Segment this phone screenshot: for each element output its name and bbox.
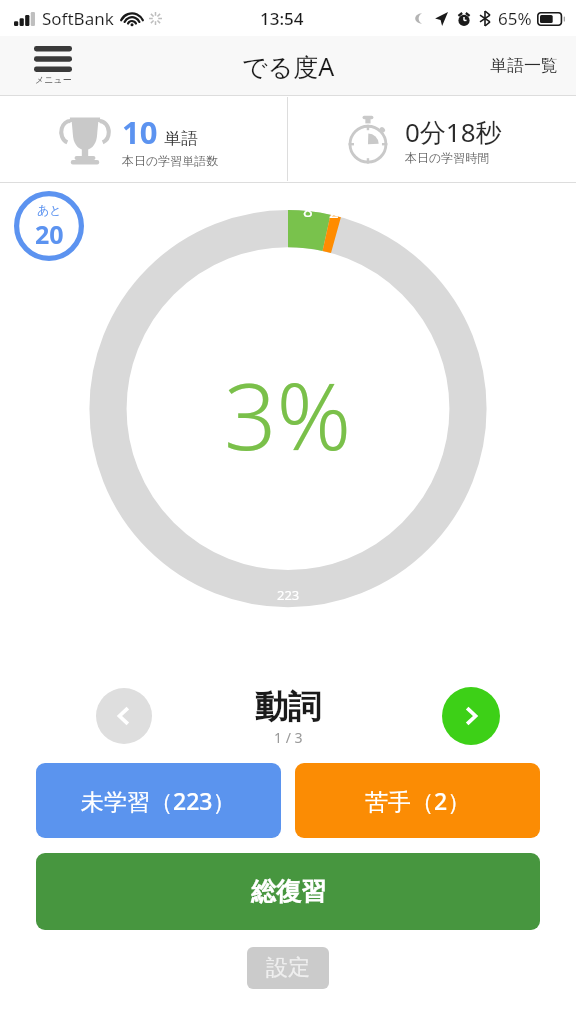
staticText: 本日の学習時間 (405, 150, 490, 165)
button[interactable]: あと (14, 191, 84, 261)
staticText: 未学習（223） (81, 785, 236, 816)
button[interactable]: 次へ (442, 687, 500, 745)
button[interactable]: 苦手（2） (295, 763, 540, 838)
staticText: 総復習 (251, 876, 326, 907)
staticText: 動詞 (255, 686, 321, 728)
staticText: 1 / 3 (274, 728, 303, 747)
staticText: 0分18秒 (405, 114, 502, 150)
staticText: 8 (303, 199, 313, 222)
staticText: 苦手（2） (365, 785, 471, 816)
staticText: でる度A (242, 49, 335, 83)
staticText: 223 (277, 586, 300, 604)
button[interactable]: メニュー (28, 43, 78, 88)
staticText: 3% (224, 352, 352, 477)
button[interactable]: 未学習（223） (36, 763, 281, 838)
staticText: 単語一覧 (490, 55, 558, 76)
button[interactable]: 0分18秒 (288, 96, 576, 182)
button[interactable]: 設定 (247, 947, 329, 989)
staticText: 2 (329, 200, 339, 223)
staticText: 単語 (164, 128, 198, 149)
staticText: 65% (498, 7, 532, 30)
button[interactable]: 前へ (96, 688, 152, 744)
staticText: 10 (122, 111, 158, 153)
button[interactable]: 単語一覧 (472, 43, 576, 88)
staticText: 設定 (266, 954, 310, 982)
button[interactable]: 10 (0, 96, 287, 182)
staticText: SoftBank (42, 7, 114, 30)
staticText: メニュー (35, 74, 72, 85)
staticText: 20 (35, 217, 64, 251)
staticText: 13:54 (260, 7, 304, 30)
button[interactable]: 総復習 (36, 853, 540, 930)
staticText: 本日の学習単語数 (122, 153, 219, 168)
staticText: あと (37, 202, 62, 217)
